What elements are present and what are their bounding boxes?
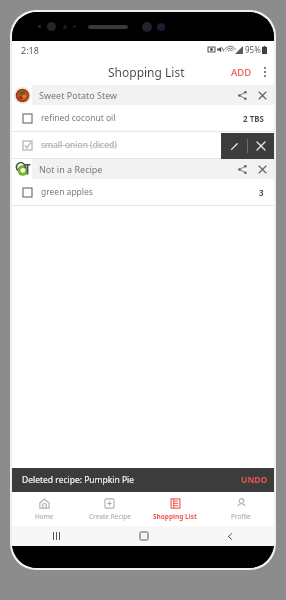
staticText: Deleted recipe: Pumpkin Pie	[22, 474, 235, 486]
button[interactable]: Sweet Potato Stew	[12, 85, 274, 105]
button[interactable]: Close	[252, 85, 272, 105]
button[interactable]: Create Recipe	[77, 492, 142, 526]
staticText: 2:18	[21, 44, 39, 56]
button[interactable]: small-onion (diced)	[12, 132, 274, 158]
staticText: refined coconut oil	[41, 112, 243, 124]
staticText: Home	[35, 512, 54, 521]
button[interactable]: Shopping List	[142, 492, 208, 526]
staticText: 2 TBS	[243, 113, 264, 124]
button[interactable]: refined coconut oil	[12, 105, 274, 131]
staticText: 1	[259, 140, 264, 151]
button[interactable]: green apples	[12, 179, 274, 205]
button[interactable]: Not in a Recipe	[12, 159, 274, 179]
button[interactable]: Share	[232, 159, 252, 179]
staticText: Create Recipe	[89, 512, 131, 521]
button[interactable]: Recents	[12, 526, 100, 546]
button[interactable]: More options	[256, 60, 274, 84]
button[interactable]: ADD	[231, 66, 252, 79]
staticText: 3	[259, 187, 264, 198]
staticText: Profile	[231, 512, 251, 521]
staticText: green apples	[41, 186, 259, 198]
staticText: Shopping List	[108, 64, 185, 80]
staticText: 95%	[245, 44, 261, 55]
button[interactable]: Share	[232, 85, 252, 105]
staticText: small-onion (diced)	[41, 139, 259, 151]
staticText: Sweet Potato Stew	[39, 89, 232, 101]
button[interactable]: Edit	[221, 133, 247, 159]
button[interactable]: Home	[100, 526, 187, 546]
staticText: Shopping List	[153, 512, 197, 521]
button[interactable]: Profile	[208, 492, 274, 526]
button[interactable]: Delete	[248, 133, 274, 159]
staticText: ADD	[231, 66, 252, 79]
staticText: Not in a Recipe	[39, 163, 232, 175]
button[interactable]: Back	[187, 526, 274, 546]
button[interactable]: Home	[12, 492, 77, 526]
button[interactable]: UNDO	[241, 474, 268, 486]
button[interactable]: Close	[252, 159, 272, 179]
staticText: UNDO	[241, 474, 268, 486]
